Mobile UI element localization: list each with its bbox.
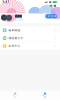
staticText: 我的 bbox=[44, 96, 46, 98]
button[interactable]: 我的银行卡 bbox=[0, 34, 60, 42]
button[interactable]: 账单明细 bbox=[0, 26, 60, 34]
button[interactable]: 我的 bbox=[30, 90, 60, 100]
staticText: ¥199 bbox=[15, 18, 23, 22]
staticText: 我的银行卡 bbox=[8, 36, 23, 40]
button[interactable]: 会员中心 bbox=[0, 42, 60, 50]
staticText: 账单明细 bbox=[8, 29, 20, 32]
button[interactable]: 立即查看 bbox=[45, 14, 57, 18]
staticText: 立即查看 bbox=[45, 15, 57, 18]
staticText: 9:41 bbox=[3, 0, 10, 4]
button[interactable]: 首页 bbox=[0, 90, 30, 100]
staticText: 会员中心 bbox=[8, 44, 20, 48]
